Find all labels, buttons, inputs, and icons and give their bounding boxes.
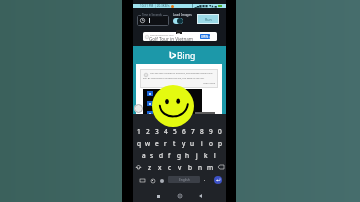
- button[interactable]: 6: [179, 125, 188, 137]
- staticText: l: [214, 151, 216, 160]
- staticText: 8: [200, 127, 204, 136]
- staticText: 2: [146, 127, 150, 136]
- staticText: c: [168, 163, 172, 172]
- staticText: h: [185, 151, 190, 160]
- staticText: 5: [173, 127, 177, 136]
- staticText: Load Images: [173, 13, 192, 17]
- button[interactable]: Load Images toggle: [173, 18, 183, 24]
- staticText: ads. By continuing to browse this site, …: [143, 77, 205, 80]
- button[interactable]: This site uses cookies for analytics, pe…: [140, 69, 218, 88]
- button[interactable]: y: [179, 137, 188, 149]
- button[interactable]: c: [165, 161, 175, 173]
- button[interactable]: 1: [135, 125, 143, 137]
- button[interactable]: z: [144, 161, 155, 173]
- button[interactable]: 9: [206, 125, 215, 137]
- staticText: English: [179, 178, 190, 182]
- staticText: r: [164, 139, 167, 148]
- button[interactable]: s: [148, 149, 156, 161]
- staticText: x: [158, 163, 162, 172]
- staticText: q: [137, 139, 141, 148]
- staticText: Ad: [177, 31, 181, 34]
- button[interactable]: vietnamgolfcity.com: [143, 32, 217, 41]
- button[interactable]: d: [156, 149, 165, 161]
- staticText: a: [142, 151, 146, 160]
- staticText: d: [159, 151, 163, 160]
- button[interactable]: l: [210, 149, 219, 161]
- button[interactable]: v: [175, 161, 185, 173]
- staticText: 4: [164, 127, 168, 136]
- staticText: v: [178, 163, 182, 172]
- button[interactable]: 5: [170, 125, 179, 137]
- button[interactable]: b: [185, 161, 195, 173]
- button[interactable]: o: [206, 137, 215, 149]
- button[interactable]: u: [188, 137, 197, 149]
- staticText: o: [209, 139, 213, 148]
- staticText: 0: [218, 127, 222, 136]
- button[interactable]: [137, 15, 169, 26]
- button[interactable]: n: [195, 161, 205, 173]
- staticText: t: [173, 139, 176, 148]
- button[interactable]: q: [135, 137, 143, 149]
- staticText: g: [177, 151, 181, 160]
- staticText: y: [182, 139, 186, 148]
- button[interactable]: Back: [196, 192, 204, 200]
- button[interactable]: Recents: [154, 192, 162, 200]
- staticText: s: [150, 151, 154, 160]
- button[interactable]: Run: [198, 15, 218, 23]
- staticText: k: [204, 151, 208, 160]
- button[interactable]: 2: [143, 125, 152, 137]
- button[interactable]: r: [161, 137, 170, 149]
- staticText: Bing: [177, 50, 196, 62]
- button[interactable]: Enter: [214, 176, 222, 184]
- staticText: b: [188, 163, 192, 172]
- staticText: Golf Tour in Vietnam: [149, 36, 194, 41]
- staticText: ▎▂▄▆ ■■ ▼▲ ▄: [192, 4, 217, 8]
- button[interactable]: 4: [161, 125, 170, 137]
- button[interactable]: w: [143, 137, 152, 149]
- staticText: 10:31 PM | 20.3KB/s: [140, 4, 170, 8]
- staticText: i: [201, 139, 203, 148]
- staticText: m: [207, 163, 214, 172]
- button[interactable]: OPEN ›: [200, 34, 210, 39]
- button[interactable]: 0: [215, 125, 224, 137]
- button[interactable]: Delete: [215, 161, 226, 173]
- staticText: p: [218, 139, 222, 148]
- button[interactable]: 8: [197, 125, 206, 137]
- staticText: e: [155, 139, 159, 148]
- button[interactable]: t: [170, 137, 179, 149]
- staticText: w: [145, 139, 151, 148]
- button[interactable]: .: [202, 176, 208, 183]
- button[interactable]: x: [155, 161, 165, 173]
- button[interactable]: j: [192, 149, 201, 161]
- staticText: f: [168, 151, 171, 160]
- staticText: n: [198, 163, 203, 172]
- button[interactable]: a: [140, 149, 148, 161]
- button[interactable]: Home: [176, 192, 184, 200]
- button[interactable]: Symbols: [139, 177, 146, 184]
- staticText: vietnamgolfcity.com: [150, 33, 174, 36]
- button[interactable]: Shift: [133, 161, 144, 173]
- button[interactable]: h: [183, 149, 192, 161]
- button[interactable]: 7: [188, 125, 197, 137]
- staticText: 9: [209, 127, 213, 136]
- button[interactable]: f: [165, 149, 174, 161]
- staticText: OPEN ›: [201, 35, 210, 39]
- button[interactable]: k: [201, 149, 210, 161]
- button[interactable]: Settings: [158, 177, 165, 184]
- staticText: z: [148, 163, 152, 172]
- staticText: Time in Seconds: [142, 13, 162, 17]
- button[interactable]: m: [205, 161, 215, 173]
- button[interactable]: p: [215, 137, 224, 149]
- staticText: 7: [191, 127, 195, 136]
- button[interactable]: g: [174, 149, 183, 161]
- button[interactable]: Emoji: [149, 177, 156, 184]
- staticText: 1: [137, 127, 141, 136]
- staticText: 6: [182, 127, 186, 136]
- staticText: j: [196, 151, 198, 160]
- button[interactable]: e: [152, 137, 161, 149]
- staticText: u: [190, 139, 195, 148]
- button[interactable]: 3: [152, 125, 161, 137]
- button[interactable]: i: [197, 137, 206, 149]
- button[interactable]: English: [168, 176, 200, 183]
- staticText: Run: [205, 17, 212, 22]
